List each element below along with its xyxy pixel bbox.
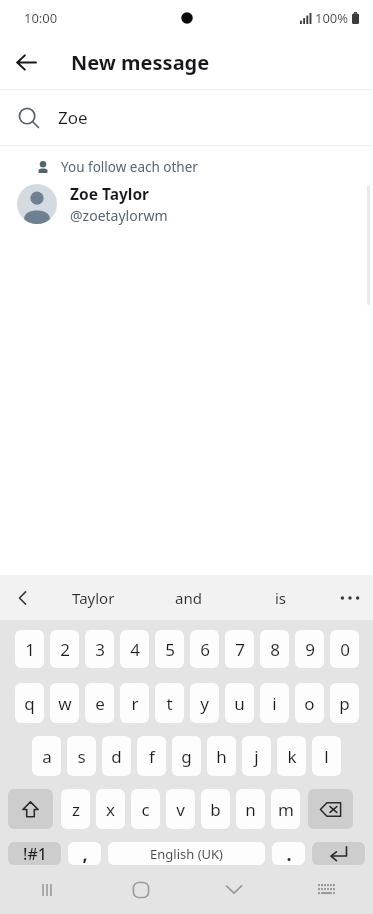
- button[interactable]: i: [260, 683, 289, 723]
- staticText: v: [176, 798, 185, 821]
- button[interactable]: v: [166, 789, 195, 829]
- button[interactable]: Backspace: [308, 789, 353, 829]
- staticText: x: [106, 798, 115, 821]
- staticText: q: [24, 692, 35, 715]
- staticText: .: [286, 842, 292, 865]
- button[interactable]: f: [137, 736, 166, 776]
- button[interactable]: a: [32, 736, 61, 776]
- staticText: 2: [60, 638, 70, 661]
- button[interactable]: 1: [15, 630, 44, 668]
- button[interactable]: 5: [155, 630, 184, 668]
- button[interactable]: ,: [68, 842, 101, 865]
- staticText: l: [324, 745, 329, 768]
- button[interactable]: 7: [225, 630, 254, 668]
- button[interactable]: 2: [50, 630, 79, 668]
- staticText: ,: [82, 842, 88, 865]
- button[interactable]: n: [236, 789, 265, 829]
- staticText: 0: [340, 638, 350, 661]
- button[interactable]: p: [330, 683, 359, 723]
- staticText: Taylor: [72, 588, 115, 608]
- button[interactable]: o: [295, 683, 324, 723]
- staticText: p: [339, 692, 350, 715]
- button[interactable]: You follow each other: [0, 146, 373, 225]
- button[interactable]: l: [312, 736, 341, 776]
- button[interactable]: w: [50, 683, 79, 723]
- staticText: 8: [270, 638, 280, 661]
- staticText: j: [254, 745, 259, 768]
- button[interactable]: .: [272, 842, 305, 865]
- button[interactable]: r: [120, 683, 149, 723]
- staticText: Zoe: [58, 106, 88, 129]
- button[interactable]: 8: [260, 630, 289, 668]
- staticText: r: [131, 692, 139, 715]
- button[interactable]: Back: [0, 36, 53, 89]
- staticText: is: [275, 588, 287, 608]
- staticText: e: [95, 692, 105, 715]
- button[interactable]: b: [201, 789, 230, 829]
- staticText: g: [181, 745, 192, 768]
- button[interactable]: 4: [120, 630, 149, 668]
- staticText: h: [216, 745, 227, 768]
- button[interactable]: is: [236, 575, 326, 620]
- button[interactable]: Hide keyboard: [187, 865, 280, 914]
- staticText: i: [272, 692, 277, 715]
- staticText: 7: [235, 638, 245, 661]
- button[interactable]: d: [102, 736, 131, 776]
- staticText: s: [77, 745, 86, 768]
- staticText: 4: [130, 638, 140, 661]
- staticText: u: [234, 692, 245, 715]
- button[interactable]: s: [67, 736, 96, 776]
- staticText: @zoetaylorwm: [70, 206, 168, 225]
- staticText: and: [175, 588, 202, 608]
- button[interactable]: Previous suggestions: [0, 575, 46, 620]
- staticText: 3: [95, 638, 105, 661]
- staticText: 100%: [315, 9, 349, 27]
- button[interactable]: c: [131, 789, 160, 829]
- staticText: 9: [305, 638, 315, 661]
- button[interactable]: 3: [85, 630, 114, 668]
- button[interactable]: Zoe: [0, 90, 373, 145]
- button[interactable]: k: [277, 736, 306, 776]
- staticText: 10:00: [24, 9, 58, 27]
- staticText: y: [200, 692, 209, 715]
- button[interactable]: y: [190, 683, 219, 723]
- button[interactable]: g: [172, 736, 201, 776]
- button[interactable]: t: [155, 683, 184, 723]
- staticText: d: [111, 745, 122, 768]
- staticText: 6: [200, 638, 210, 661]
- button[interactable]: English (UK): [108, 842, 265, 865]
- button[interactable]: x: [96, 789, 125, 829]
- staticText: You follow each other: [61, 158, 198, 176]
- button[interactable]: h: [207, 736, 236, 776]
- staticText: z: [72, 798, 80, 821]
- button[interactable]: 0: [330, 630, 359, 668]
- staticText: !#1: [23, 843, 47, 865]
- button[interactable]: Home: [94, 865, 187, 914]
- staticText: k: [287, 745, 297, 768]
- staticText: o: [304, 692, 315, 715]
- button[interactable]: !#1: [8, 842, 61, 865]
- button[interactable]: e: [85, 683, 114, 723]
- button[interactable]: Taylor: [46, 575, 141, 620]
- button[interactable]: Shift: [8, 789, 53, 829]
- staticText: m: [278, 798, 294, 821]
- button[interactable]: z: [61, 789, 90, 829]
- staticText: English (UK): [150, 845, 223, 863]
- staticText: c: [141, 798, 150, 821]
- button[interactable]: 6: [190, 630, 219, 668]
- button[interactable]: j: [242, 736, 271, 776]
- button[interactable]: q: [15, 683, 44, 723]
- button[interactable]: u: [225, 683, 254, 723]
- button[interactable]: m: [271, 789, 300, 829]
- staticText: f: [149, 745, 155, 768]
- staticText: b: [210, 798, 221, 821]
- button[interactable]: Enter: [312, 842, 365, 865]
- button[interactable]: Change keyboard: [280, 865, 373, 914]
- staticText: 5: [165, 638, 175, 661]
- button[interactable]: Recents: [0, 865, 94, 914]
- staticText: n: [245, 798, 256, 821]
- button[interactable]: More options: [326, 575, 373, 620]
- staticText: a: [42, 745, 52, 768]
- button[interactable]: 9: [295, 630, 324, 668]
- button[interactable]: and: [141, 575, 236, 620]
